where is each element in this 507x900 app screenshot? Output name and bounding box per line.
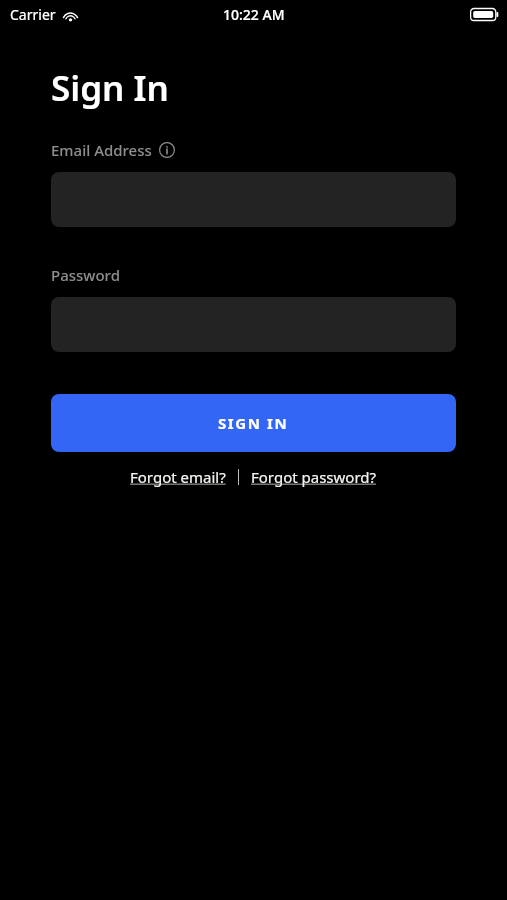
staticText: Sign In bbox=[51, 64, 169, 112]
staticText: Email Address bbox=[51, 140, 152, 160]
staticText: 10:22 AM bbox=[223, 5, 285, 24]
staticText: Password bbox=[51, 265, 120, 285]
button[interactable]: Forgot password? bbox=[249, 465, 379, 489]
staticText: SIGN IN bbox=[218, 413, 289, 433]
button[interactable]: SIGN IN bbox=[51, 394, 456, 452]
staticText: Forgot password? bbox=[251, 467, 377, 487]
other: More information about email address bbox=[159, 142, 175, 158]
staticText: Forgot email? bbox=[130, 467, 226, 487]
staticText: Carrier bbox=[10, 5, 56, 24]
button[interactable]: Forgot email? bbox=[128, 465, 228, 489]
